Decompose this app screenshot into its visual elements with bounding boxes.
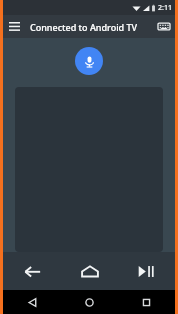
staticText: 2:11	[158, 3, 172, 13]
button[interactable]: Back	[3, 290, 61, 314]
button[interactable]: Keyboard input	[152, 15, 175, 38]
button[interactable]: Open navigation menu	[3, 15, 26, 38]
button[interactable]: Recent apps	[118, 290, 175, 314]
staticText: Connected to Android TV	[30, 21, 152, 33]
button[interactable]: Home	[61, 252, 118, 290]
button[interactable]: Back	[3, 252, 61, 290]
button[interactable]: Home	[61, 290, 118, 314]
button[interactable]: Voice search	[75, 47, 103, 75]
button[interactable]: Play or pause	[118, 252, 175, 290]
